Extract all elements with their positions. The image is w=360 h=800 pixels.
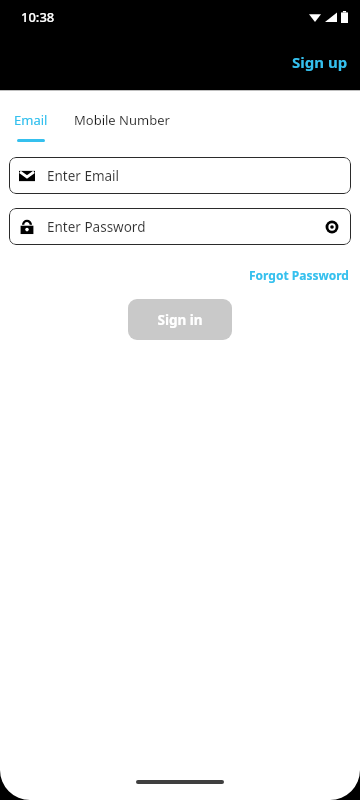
staticText: 10:38 <box>21 8 55 26</box>
button[interactable]: Forgot Password <box>238 265 360 285</box>
button[interactable]: Sign up <box>280 44 360 80</box>
button[interactable]: Email <box>0 111 62 142</box>
staticText: Enter Password <box>47 218 317 236</box>
staticText: Enter Email <box>47 167 120 185</box>
button[interactable]: Show password <box>317 212 347 242</box>
staticText: Forgot Password <box>249 267 349 283</box>
button[interactable]: Sign in <box>128 299 232 340</box>
button[interactable]: Enter Password <box>9 208 351 245</box>
button[interactable]: Mobile Number <box>62 111 182 142</box>
staticText: Email <box>14 111 48 129</box>
button[interactable]: Enter Email <box>9 157 351 194</box>
staticText: Sign in <box>157 311 203 329</box>
staticText: Mobile Number <box>74 111 170 129</box>
staticText: Sign up <box>292 52 348 72</box>
